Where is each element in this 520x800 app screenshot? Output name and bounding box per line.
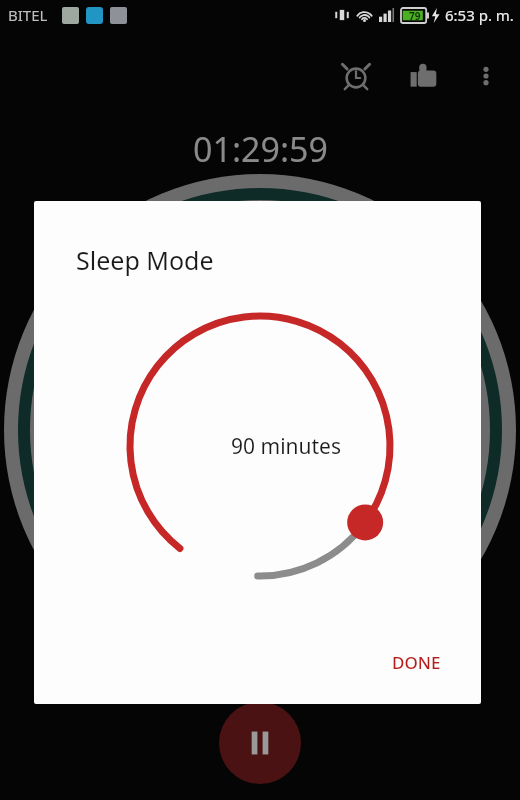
staticText: 6:53 p. m. [445,5,514,25]
staticText: 90 minutes [231,432,341,461]
staticText: DONE [392,651,441,674]
staticText: 01:29:59 [193,126,328,172]
button[interactable]: Alarm [330,50,382,102]
button[interactable]: More options [460,50,512,102]
staticText: 79 [409,9,421,23]
button[interactable]: Pause [219,702,301,784]
staticText: BITEL [8,5,48,25]
staticText: Sleep Mode [76,243,214,277]
button[interactable]: Like [398,50,450,102]
button[interactable]: DONE [380,643,453,682]
button[interactable]: 90 minutes [130,316,442,656]
